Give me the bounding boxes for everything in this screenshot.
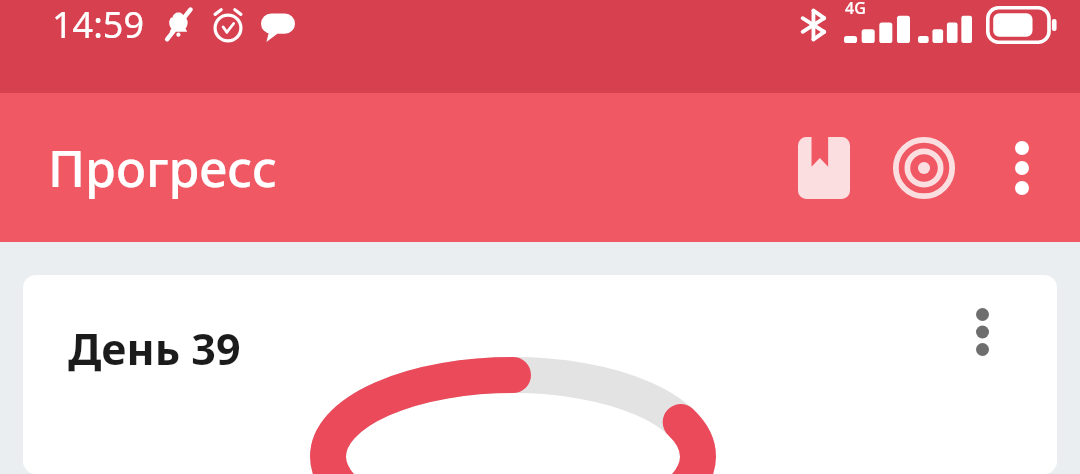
button[interactable]: Ещё: [974, 120, 1070, 216]
staticText: 4G: [845, 0, 866, 19]
button[interactable]: Меню дня: [951, 301, 1013, 363]
button[interactable]: Цель: [874, 118, 974, 218]
staticText: День 39: [68, 319, 241, 378]
button[interactable]: День 39: [23, 275, 1057, 474]
staticText: Прогресс: [48, 134, 277, 202]
staticText: 14:59: [52, 0, 145, 49]
button[interactable]: Дневник: [774, 118, 874, 218]
